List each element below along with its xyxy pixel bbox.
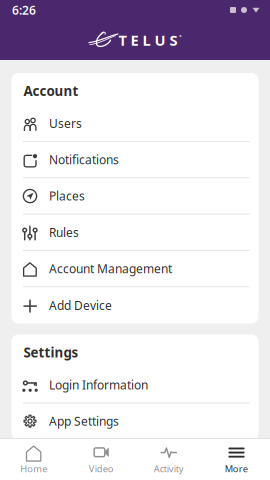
staticText: Add Device xyxy=(49,297,112,313)
button[interactable]: Account Management xyxy=(11,251,258,287)
staticText: Settings xyxy=(23,343,78,361)
staticText: Places xyxy=(49,188,85,204)
staticText: Home xyxy=(20,463,47,475)
button[interactable]: Home xyxy=(0,440,67,479)
staticText: Account Management xyxy=(49,261,172,276)
button[interactable]: App Settings xyxy=(11,403,258,440)
staticText: TELUS xyxy=(118,30,177,50)
button[interactable]: Video xyxy=(67,440,135,479)
button[interactable]: More xyxy=(202,440,270,479)
button[interactable]: Notifications xyxy=(11,142,258,178)
staticText: Notifications xyxy=(49,152,119,168)
staticText: Rules xyxy=(49,224,79,240)
staticText: More xyxy=(225,463,248,475)
staticText: 6:26 xyxy=(12,2,36,18)
staticText: Login Information xyxy=(49,377,148,393)
button[interactable]: Rules xyxy=(11,215,258,251)
button[interactable]: Login Information xyxy=(11,367,258,403)
staticText: Video xyxy=(89,463,114,475)
staticText: Users xyxy=(49,115,82,131)
staticText: Activity xyxy=(154,463,184,475)
button[interactable]: Places xyxy=(11,178,258,215)
button[interactable]: Add Device xyxy=(11,287,258,323)
staticText: App Settings xyxy=(49,413,119,429)
button[interactable]: Activity xyxy=(135,440,202,479)
button[interactable]: Users xyxy=(11,106,258,142)
staticText: Account xyxy=(23,82,78,100)
